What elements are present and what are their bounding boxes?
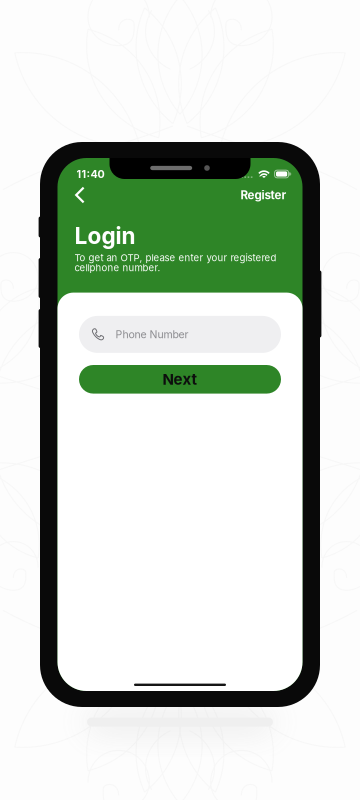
staticText: Phone Number: [115, 328, 188, 341]
staticText: cellphone number.: [74, 262, 160, 274]
staticText: 11:40: [76, 167, 104, 180]
button[interactable]: Back: [65, 182, 95, 208]
button[interactable]: Register: [237, 182, 289, 208]
button[interactable]: Next: [79, 365, 281, 394]
staticText: To get an OTP, please enter your registe…: [74, 252, 276, 264]
staticText: Login: [74, 222, 135, 249]
staticText: Next: [162, 370, 197, 388]
staticText: Register: [240, 188, 286, 202]
